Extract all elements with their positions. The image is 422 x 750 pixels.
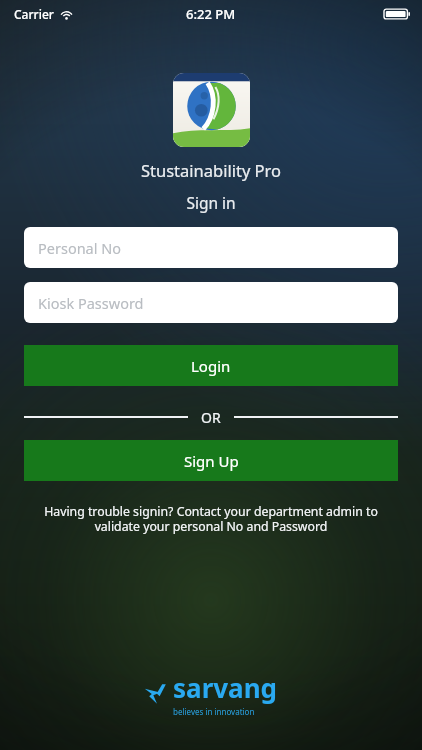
staticText: Kiosk Password xyxy=(38,293,144,313)
staticText: 6:22 PM xyxy=(186,5,236,23)
button[interactable]: Personal No xyxy=(24,227,398,268)
staticText: sarvang xyxy=(173,670,278,705)
button[interactable]: Login xyxy=(24,345,398,386)
staticText: Stustainability Pro xyxy=(0,159,422,181)
staticText: Personal No xyxy=(38,238,122,258)
staticText: Sign in xyxy=(0,192,422,213)
staticText: OR xyxy=(201,408,221,426)
other: Stustainability Pro logo xyxy=(173,73,250,147)
staticText: Sign Up xyxy=(184,451,239,471)
staticText: believes in innovation xyxy=(173,706,255,717)
button[interactable]: Sign Up xyxy=(24,440,398,481)
staticText: Having trouble signin? Contact your depa… xyxy=(44,503,378,534)
other: sarvang believes in innovation xyxy=(144,670,278,717)
staticText: Login xyxy=(191,356,231,376)
button[interactable]: Kiosk Password xyxy=(24,282,398,323)
staticText: Carrier xyxy=(14,6,54,22)
